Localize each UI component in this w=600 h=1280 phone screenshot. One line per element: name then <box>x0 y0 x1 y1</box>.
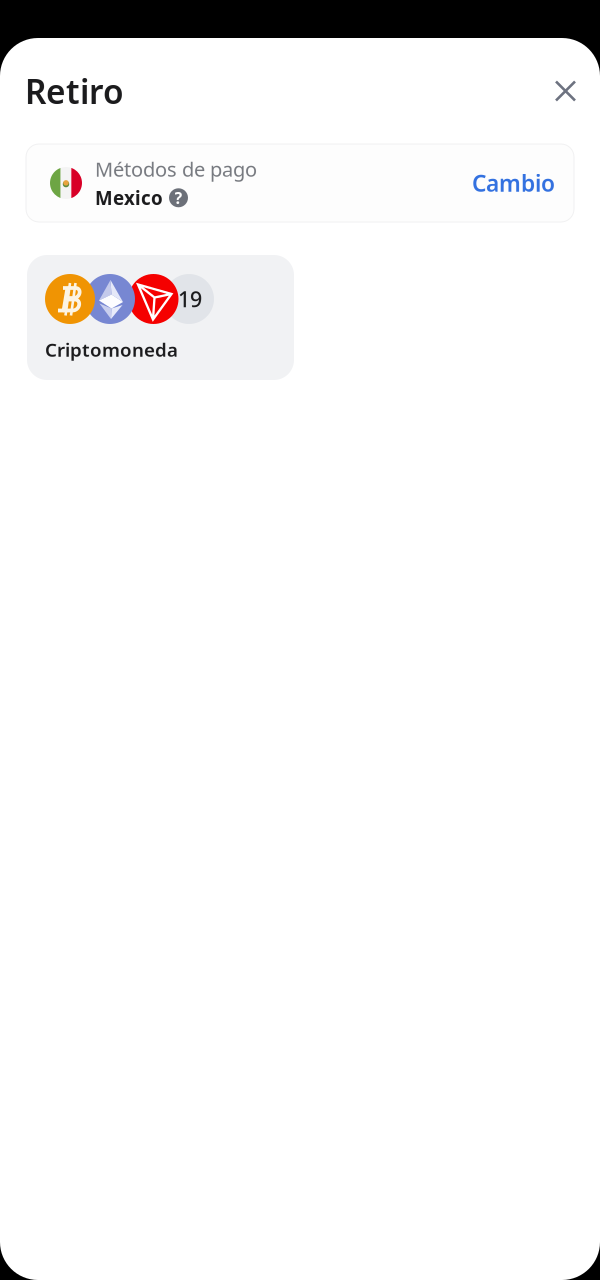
staticText: Retiro <box>25 69 124 113</box>
button[interactable]: Cerrar <box>547 72 584 109</box>
staticText: ? <box>174 187 182 208</box>
staticText: Cambio <box>472 168 555 198</box>
staticText: Criptomoneda <box>45 337 178 362</box>
staticText: +19 <box>166 285 202 313</box>
staticText: Mexico <box>95 185 163 210</box>
staticText: Métodos de pago <box>95 156 257 182</box>
button[interactable]: +19 <box>27 255 294 380</box>
button[interactable]: Métodos de pago <box>26 144 574 222</box>
